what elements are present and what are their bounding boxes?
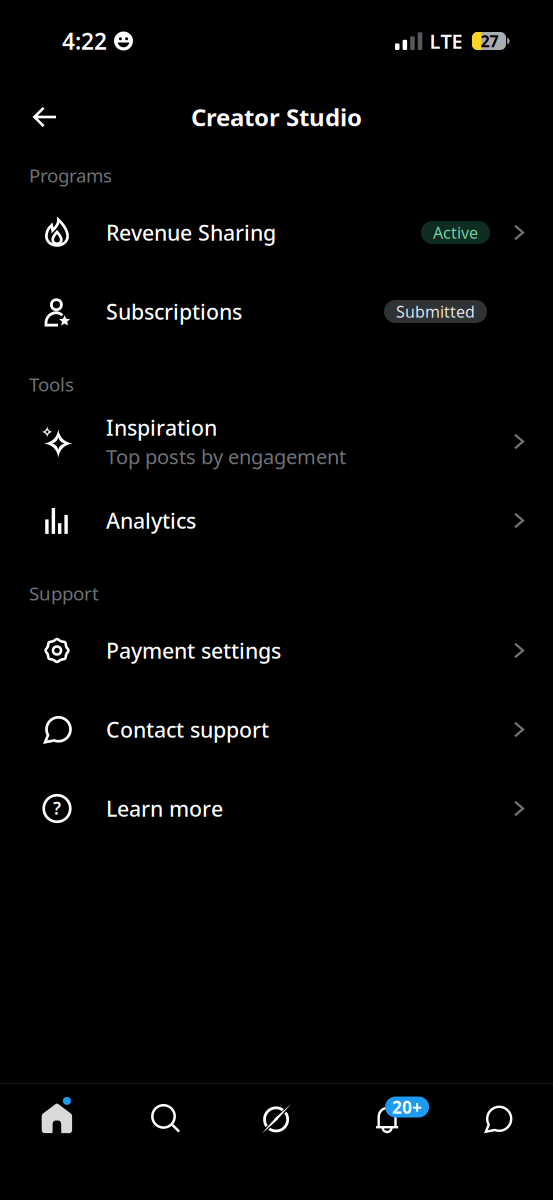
staticText: Creator Studio xyxy=(191,101,362,133)
button[interactable]: Payment settings xyxy=(0,611,553,690)
staticText: 20+ xyxy=(392,1095,422,1119)
button[interactable]: Analytics xyxy=(0,481,553,560)
button[interactable]: Inspiration xyxy=(0,402,553,481)
staticText: Active xyxy=(433,222,478,243)
button[interactable]: Home xyxy=(0,1084,111,1154)
staticText: ? xyxy=(53,796,61,820)
staticText: Learn more xyxy=(106,794,223,823)
button[interactable]: ? xyxy=(0,769,553,848)
staticText: Inspiration xyxy=(106,413,217,442)
button[interactable]: Contact support xyxy=(0,690,553,769)
staticText: Revenue Sharing xyxy=(106,218,276,247)
button[interactable]: Back xyxy=(21,88,69,136)
staticText: Analytics xyxy=(106,506,196,535)
staticText: 27 xyxy=(480,30,498,52)
button[interactable]: Revenue Sharing xyxy=(0,193,553,272)
staticText: LTE xyxy=(429,27,462,55)
staticText: 4:22 xyxy=(62,26,107,56)
staticText: Top posts by engagement xyxy=(106,443,346,470)
button[interactable]: Grok xyxy=(221,1084,332,1154)
staticText: Tools xyxy=(29,372,74,397)
staticText: Programs xyxy=(29,163,112,188)
staticText: Subscriptions xyxy=(106,297,242,326)
staticText: Payment settings xyxy=(106,636,281,665)
button[interactable]: Subscriptions xyxy=(0,272,553,351)
staticText: Support xyxy=(29,581,99,606)
staticText: Contact support xyxy=(106,715,269,744)
button[interactable]: Search xyxy=(111,1084,221,1154)
button[interactable]: Notifications xyxy=(332,1084,442,1154)
staticText: Submitted xyxy=(396,301,475,322)
button[interactable]: Messages xyxy=(442,1084,553,1154)
